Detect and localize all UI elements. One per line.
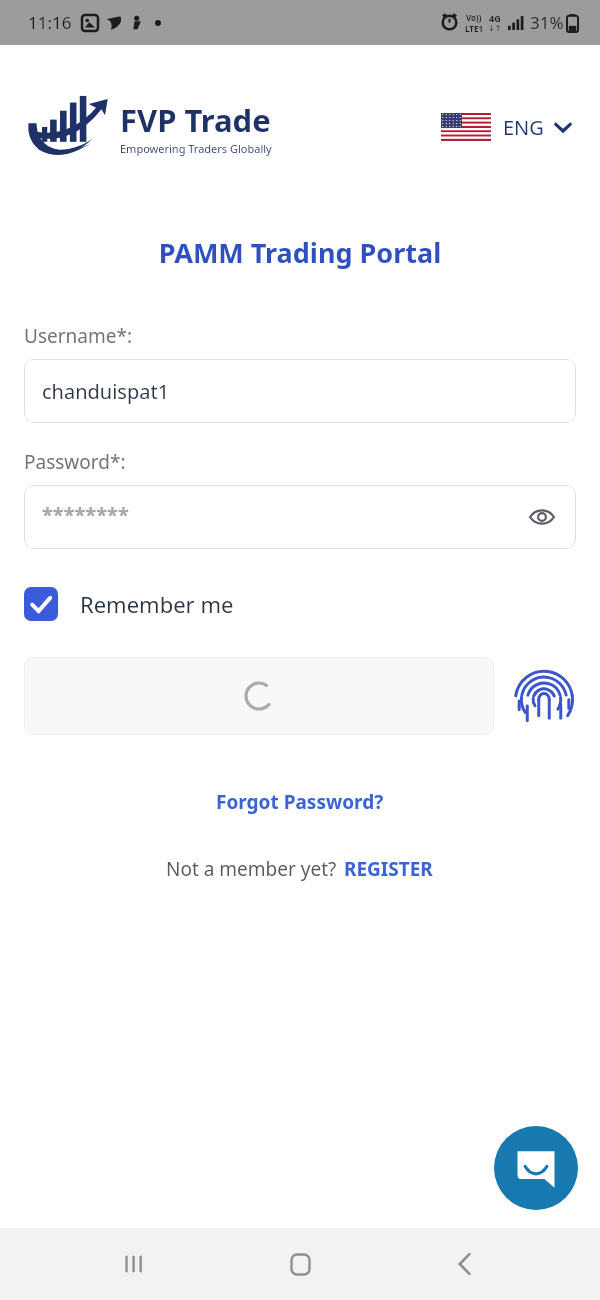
button[interactable]: Home — [270, 1234, 330, 1294]
staticText: Forgot Password? — [216, 789, 384, 815]
button[interactable]: REGISTER — [342, 853, 435, 885]
staticText: 11:16 — [28, 11, 72, 34]
staticText: ******** — [42, 501, 129, 528]
staticText: 31% — [530, 11, 564, 34]
button[interactable]: Fingerprint login — [508, 660, 580, 732]
staticText: Empowering Traders Globally — [120, 141, 272, 156]
button[interactable]: Forgot Password? — [208, 785, 392, 819]
button[interactable]: Show password — [522, 497, 562, 537]
staticText: 4G — [489, 12, 501, 24]
button[interactable]: chanduispat1 — [24, 359, 576, 423]
button[interactable]: ******** — [24, 485, 576, 549]
staticText: ENG — [503, 114, 544, 141]
button[interactable]: ENG — [437, 109, 576, 145]
staticText: Username*: — [24, 323, 132, 349]
staticText: ↓↑ — [488, 24, 502, 33]
staticText: Not a member yet? — [166, 856, 342, 882]
staticText: PAMM Trading Portal — [0, 234, 600, 271]
staticText: REGISTER — [344, 856, 433, 882]
button[interactable]: Back — [435, 1234, 495, 1294]
staticText: Vo)) — [466, 12, 482, 23]
button[interactable]: Login, loading — [24, 657, 494, 735]
button[interactable]: Recent apps — [105, 1234, 165, 1294]
staticText: FVP Trade — [120, 99, 271, 141]
button[interactable]: Open chat support — [494, 1126, 578, 1210]
staticText: LTE1 — [465, 23, 483, 34]
staticText: Remember me — [80, 589, 234, 619]
staticText: chanduispat1 — [42, 378, 170, 405]
button[interactable]: Remember me — [24, 583, 244, 625]
staticText: Password*: — [24, 449, 126, 475]
